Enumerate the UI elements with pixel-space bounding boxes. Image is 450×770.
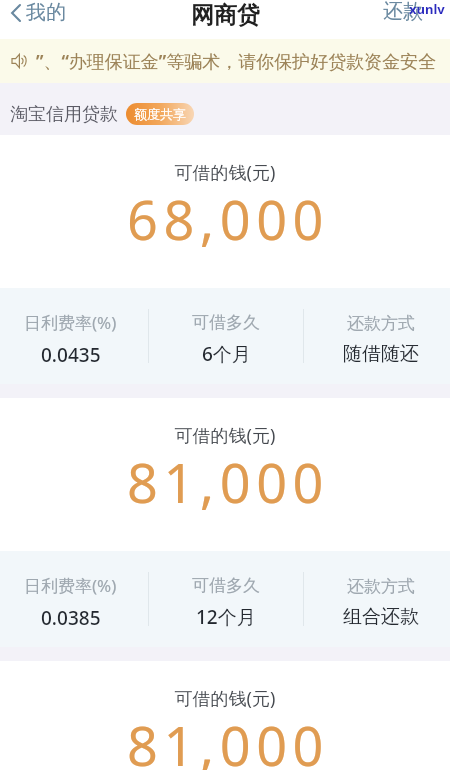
staticText: xunlv <box>409 0 445 18</box>
button[interactable]: 额度共享 <box>126 103 194 125</box>
button[interactable]: 可借的钱(元) <box>0 661 450 770</box>
staticText: 0.0385 <box>41 605 101 631</box>
staticText: 组合还款 <box>343 605 419 629</box>
staticText: 日利费率(%) <box>24 574 117 597</box>
staticText: 81,000 <box>3 708 450 770</box>
staticText: 12个月 <box>196 604 256 630</box>
staticText: 淘宝信用贷款 <box>10 103 118 126</box>
staticText: 可借多久 <box>192 575 260 596</box>
staticText: 日利费率(%) <box>24 311 117 334</box>
staticText: 81,000 <box>3 445 450 519</box>
staticText: 68,000 <box>3 182 450 256</box>
button[interactable]: 还款 <box>356 0 450 24</box>
staticText: 6个月 <box>202 341 251 367</box>
button[interactable]: 我的 <box>0 0 76 25</box>
button[interactable]: 可借的钱(元) <box>0 135 450 384</box>
staticText: 我的 <box>26 0 66 25</box>
staticText: 网商贷 <box>191 1 260 30</box>
staticText: 还款方式 <box>347 313 415 334</box>
staticText: 额度共享 <box>134 106 186 122</box>
staticText: 还款方式 <box>347 576 415 597</box>
staticText: 可借的钱(元) <box>0 686 450 711</box>
other: Announcement <box>11 53 29 69</box>
staticText: 可借多久 <box>192 312 260 333</box>
staticText: 可借的钱(元) <box>0 423 450 448</box>
staticText: ”、“办理保证金”等骗术，请你保护好贷款资金安全 <box>36 49 437 74</box>
staticText: 0.0435 <box>41 342 101 368</box>
button[interactable]: 可借的钱(元) <box>0 398 450 647</box>
staticText: 可借的钱(元) <box>0 160 450 185</box>
staticText: 随借随还 <box>343 342 419 366</box>
